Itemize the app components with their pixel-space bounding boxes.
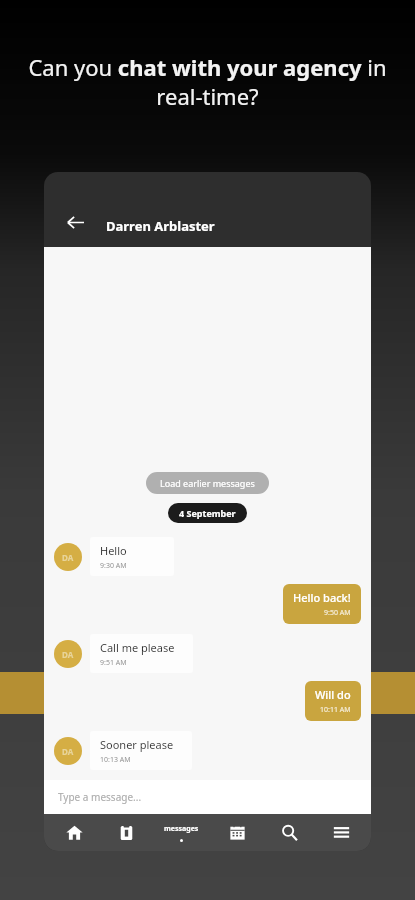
staticText: Hello bbox=[100, 543, 127, 558]
staticText: 10:13 AM bbox=[100, 755, 131, 765]
staticText: Call me please bbox=[100, 640, 175, 655]
staticText: DA bbox=[62, 552, 74, 563]
button[interactable]: DA bbox=[54, 634, 371, 673]
button[interactable]: Type a message... bbox=[44, 780, 371, 814]
staticText: Darren Arblaster bbox=[106, 217, 215, 235]
staticText: DA bbox=[62, 649, 74, 660]
button[interactable]: Home bbox=[52, 814, 96, 851]
button[interactable]: Calendar bbox=[215, 814, 259, 851]
button[interactable]: DA bbox=[54, 731, 371, 770]
staticText: 10:11 AM bbox=[320, 705, 351, 715]
button[interactable]: Menu bbox=[319, 814, 363, 851]
staticText: Will do bbox=[315, 687, 351, 702]
button[interactable]: messages bbox=[156, 814, 206, 851]
button[interactable]: Load earlier messages bbox=[146, 472, 269, 494]
staticText: 9:30 AM bbox=[100, 561, 127, 571]
staticText: Can you chat with your agency in real-ti… bbox=[26, 52, 389, 111]
staticText: Sooner please bbox=[100, 737, 174, 752]
button[interactable]: Search bbox=[267, 814, 311, 851]
staticText: Hello back! bbox=[293, 590, 351, 605]
staticText: 4 September bbox=[179, 507, 236, 519]
button[interactable]: Will do bbox=[44, 681, 361, 721]
staticText: Type a message... bbox=[58, 790, 142, 804]
button[interactable]: Hello back! bbox=[44, 584, 361, 624]
staticText: messages bbox=[164, 824, 199, 834]
staticText: DA bbox=[62, 746, 74, 757]
button[interactable]: Jobs bbox=[104, 814, 148, 851]
staticText: 9:50 AM bbox=[324, 608, 351, 618]
staticText: 9:51 AM bbox=[100, 658, 127, 668]
button[interactable]: Back bbox=[58, 205, 92, 239]
staticText: Load earlier messages bbox=[160, 477, 255, 489]
button[interactable]: DA bbox=[54, 537, 371, 576]
